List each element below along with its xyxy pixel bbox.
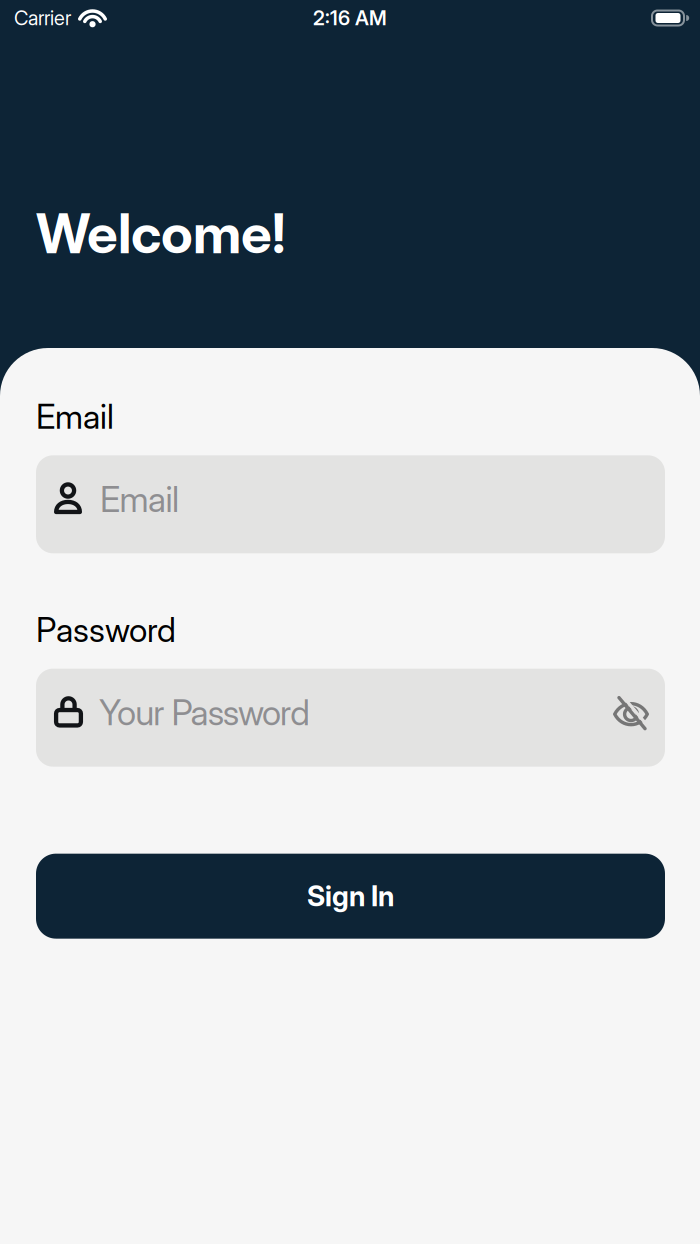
button[interactable]: Email xyxy=(36,455,665,553)
button[interactable]: Sign In xyxy=(36,854,665,939)
staticText: Your Password xyxy=(99,692,310,733)
staticText: Carrier xyxy=(14,6,71,30)
button[interactable] xyxy=(613,695,649,731)
staticText: Sign In xyxy=(307,880,394,913)
staticText: Password xyxy=(36,610,176,650)
staticText: Email xyxy=(36,397,114,436)
button[interactable]: Your Password xyxy=(36,669,665,767)
staticText: Welcome! xyxy=(36,201,285,265)
staticText: Email xyxy=(100,479,179,520)
staticText: 2:16 AM xyxy=(313,6,387,30)
